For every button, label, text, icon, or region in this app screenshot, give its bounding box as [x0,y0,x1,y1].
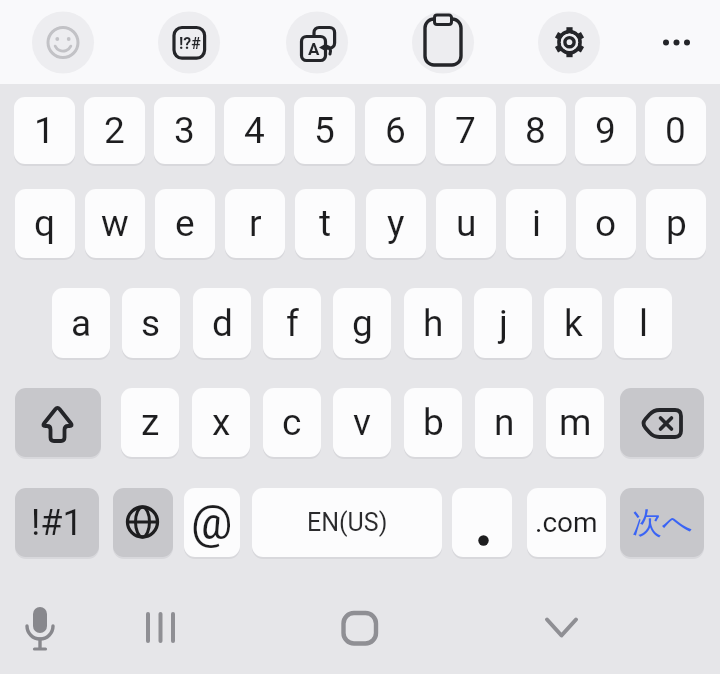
staticText: a [71,302,92,345]
staticText: g [352,302,373,345]
staticText: m [559,401,592,444]
staticText: 0 [665,109,686,152]
staticText: 3 [174,109,195,152]
staticText: r [249,202,262,245]
staticText: z [141,401,160,444]
staticText: n [494,401,515,444]
staticText: .com [535,506,598,539]
staticText: EN(US) [307,508,388,537]
staticText: !?# [179,34,201,53]
staticText: 2 [104,109,125,152]
staticText: 次へ [632,504,693,542]
staticText: @ [191,496,233,550]
staticText: p [666,202,687,245]
staticText: w [101,202,129,245]
staticText: f [286,302,299,345]
staticText: q [34,202,56,245]
staticText: A [308,39,320,59]
staticText: 4 [244,109,265,152]
staticText: 7 [455,109,476,152]
staticText: 1 [34,109,55,152]
staticText: d [212,302,233,345]
staticText: 6 [385,109,406,152]
staticText: u [456,202,477,245]
staticText: c [282,401,302,444]
staticText: i [532,202,541,245]
staticText: k [564,302,583,345]
staticText: h [423,302,444,345]
staticText: s [141,302,161,345]
staticText: x [212,401,231,444]
staticText: v [353,401,371,444]
staticText: t [319,202,332,245]
staticText: !#1 [31,502,83,544]
staticText: b [423,401,444,444]
staticText: j [499,302,508,345]
staticText: y [387,202,405,245]
staticText: 9 [595,109,616,152]
staticText: l [639,302,648,345]
staticText: 5 [314,109,335,152]
staticText: e [175,202,195,245]
staticText: 8 [525,109,546,152]
staticText: o [595,202,617,245]
